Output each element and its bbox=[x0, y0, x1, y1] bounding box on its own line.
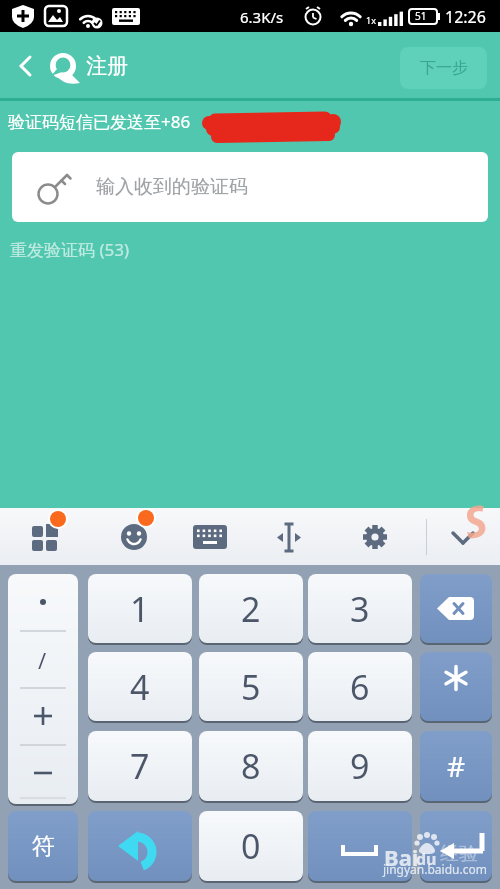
staticText: 4 bbox=[130, 664, 150, 710]
staticText: 9 bbox=[350, 743, 370, 789]
button[interactable] bbox=[420, 574, 492, 643]
staticText: Bai bbox=[384, 842, 419, 872]
button[interactable]: 2 bbox=[199, 574, 303, 643]
staticText: 51 bbox=[415, 9, 427, 23]
staticText: # bbox=[447, 747, 466, 785]
button[interactable]: 9 bbox=[308, 731, 412, 801]
staticText: 7 bbox=[130, 743, 150, 789]
button[interactable]: # bbox=[420, 731, 492, 801]
button[interactable]: 6 bbox=[308, 652, 412, 721]
button[interactable]: 下一步 bbox=[400, 47, 487, 89]
button[interactable] bbox=[23, 514, 69, 560]
staticText: 3 bbox=[350, 586, 370, 632]
button[interactable] bbox=[111, 514, 157, 560]
button[interactable]: 8 bbox=[199, 731, 303, 801]
staticText: 6.3K/s bbox=[240, 7, 284, 27]
staticText: 符 bbox=[32, 832, 55, 861]
staticText: 注册 bbox=[86, 53, 128, 79]
button[interactable]: 5 bbox=[199, 652, 303, 721]
button[interactable] bbox=[440, 514, 486, 560]
button[interactable]: 符 bbox=[8, 811, 78, 881]
button[interactable]: 输入收到的验证码 bbox=[12, 152, 488, 222]
staticText: 0 bbox=[241, 823, 261, 869]
button[interactable] bbox=[10, 48, 44, 84]
button[interactable]: 7 bbox=[88, 731, 192, 801]
staticText: 验证码短信已发送至+86 bbox=[8, 110, 191, 133]
button[interactable]: 3 bbox=[308, 574, 412, 643]
staticText: 下一步 bbox=[420, 58, 468, 78]
staticText: 2 bbox=[241, 586, 261, 632]
button[interactable]: / bbox=[8, 574, 78, 804]
button[interactable]: 1 bbox=[88, 574, 192, 643]
staticText: 8 bbox=[241, 743, 261, 789]
button[interactable] bbox=[420, 652, 492, 721]
staticText: du bbox=[416, 848, 437, 870]
button[interactable]: 0 bbox=[199, 811, 303, 881]
button[interactable] bbox=[308, 811, 412, 881]
staticText: 1 bbox=[130, 586, 150, 632]
button[interactable] bbox=[88, 811, 192, 881]
staticText: 1x bbox=[366, 14, 376, 26]
button[interactable] bbox=[420, 811, 492, 881]
staticText: / bbox=[38, 645, 47, 675]
staticText: 6 bbox=[350, 664, 370, 710]
staticText: 输入收到的验证码 bbox=[96, 175, 248, 199]
staticText: S bbox=[457, 490, 493, 551]
staticText: jingyan.baidu.com bbox=[383, 861, 487, 877]
button[interactable] bbox=[352, 514, 398, 560]
button[interactable] bbox=[266, 514, 312, 560]
staticText: 重发验证码 (53) bbox=[10, 238, 130, 261]
staticText: 12:26 bbox=[445, 6, 486, 28]
staticText: 5 bbox=[241, 664, 261, 710]
staticText: 经验 bbox=[440, 842, 478, 866]
button[interactable] bbox=[187, 514, 233, 560]
button[interactable]: 4 bbox=[88, 652, 192, 721]
